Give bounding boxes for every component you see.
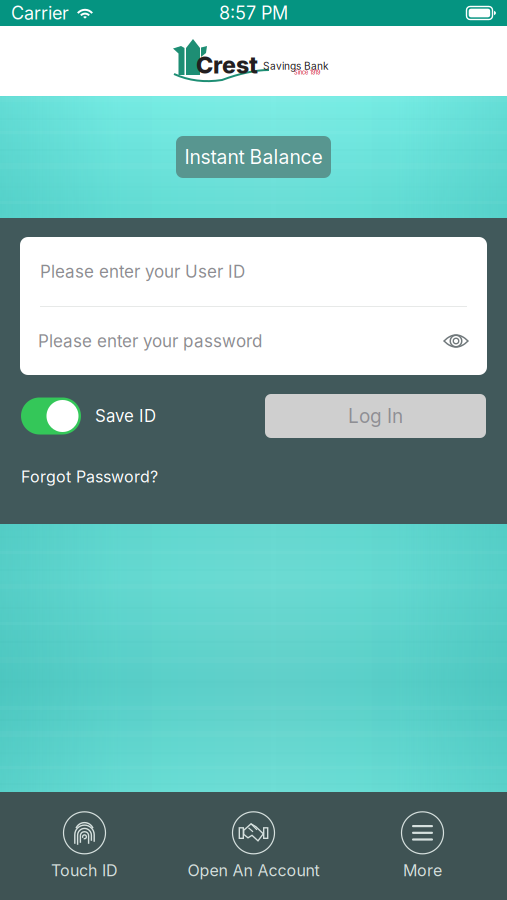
staticText: Crest [196, 51, 258, 79]
button[interactable]: Log In [265, 394, 486, 438]
staticText: Open An Account [187, 861, 319, 880]
staticText: Please enter your password [38, 331, 262, 351]
button[interactable]: More [338, 806, 507, 886]
staticText: Touch ID [51, 861, 118, 880]
staticText: Forgot Password? [21, 467, 158, 486]
button[interactable]: Forgot Password? [21, 467, 158, 486]
staticText: More [403, 861, 442, 880]
staticText: 8:57 PM [219, 2, 288, 24]
button[interactable]: Show password [443, 330, 469, 352]
staticText: Please enter your User ID [40, 261, 245, 282]
staticText: Carrier [11, 2, 69, 24]
staticText: Since 1919 [294, 69, 320, 76]
staticText: Savings Bank [263, 60, 329, 72]
button[interactable]: Touch ID [0, 806, 169, 886]
button[interactable]: Save ID [21, 397, 156, 434]
button[interactable]: Instant Balance [176, 136, 331, 178]
staticText: Log In [348, 404, 403, 427]
button[interactable]: Open An Account [169, 806, 338, 886]
staticText: Instant Balance [184, 145, 322, 169]
staticText: Save ID [95, 406, 156, 426]
